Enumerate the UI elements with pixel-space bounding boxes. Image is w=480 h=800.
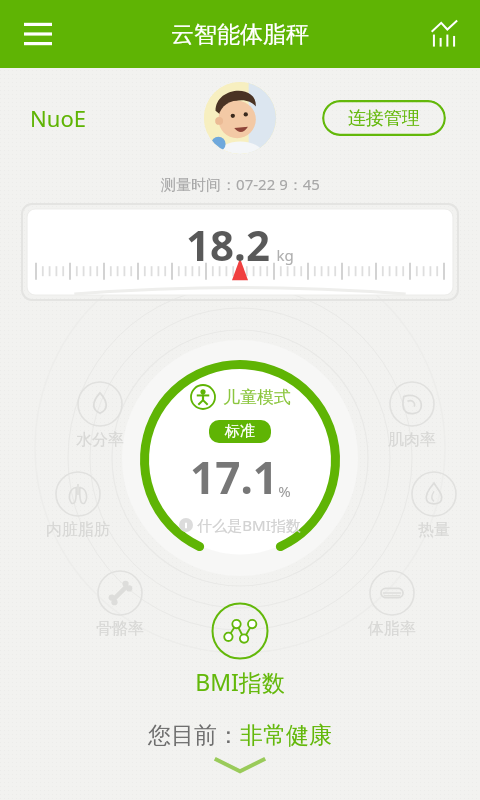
button[interactable]: Statistics xyxy=(422,12,466,56)
staticText: % xyxy=(278,481,291,501)
staticText: 标准 xyxy=(225,422,255,441)
button[interactable]: 什么是BMI指数 xyxy=(179,515,301,535)
button[interactable]: 水分率 xyxy=(56,381,144,450)
button[interactable]: 肌肉率 xyxy=(368,381,456,450)
staticText: 骨骼率 xyxy=(96,619,144,639)
staticText: 热量 xyxy=(418,520,450,540)
button[interactable]: Menu xyxy=(14,10,62,58)
staticText: 肌肉率 xyxy=(388,430,436,450)
button[interactable]: 内脏脂肪 xyxy=(34,471,122,540)
staticText: 云智能体脂秤 xyxy=(171,20,309,49)
staticText: 体脂率 xyxy=(368,619,416,639)
button[interactable]: 骨骼率 xyxy=(76,570,164,639)
button[interactable]: 体脂率 xyxy=(348,570,436,639)
staticText: 水分率 xyxy=(76,430,124,450)
staticText: 17.1 xyxy=(190,447,278,507)
staticText: 非常健康 xyxy=(240,721,332,750)
staticText: 儿童模式 xyxy=(223,387,291,408)
button[interactable]: 热量 xyxy=(390,471,478,540)
staticText: NuoE xyxy=(30,103,86,133)
button[interactable]: BMI index xyxy=(211,602,269,660)
button[interactable]: Profile photo xyxy=(204,82,276,154)
staticText: 18.2 xyxy=(186,216,270,273)
button[interactable]: 儿童模式 xyxy=(138,358,342,562)
staticText: 您目前： xyxy=(148,721,240,750)
staticText: kg xyxy=(276,245,294,265)
staticText: 什么是BMI指数 xyxy=(197,515,301,535)
staticText: 连接管理 xyxy=(348,107,420,130)
staticText: BMI指数 xyxy=(195,666,285,697)
staticText: 内脏脂肪 xyxy=(46,520,110,540)
button[interactable]: 18.2 xyxy=(22,204,458,300)
button[interactable]: 连接管理 xyxy=(322,100,446,136)
staticText: 测量时间：07-22 9：45 xyxy=(161,174,320,194)
